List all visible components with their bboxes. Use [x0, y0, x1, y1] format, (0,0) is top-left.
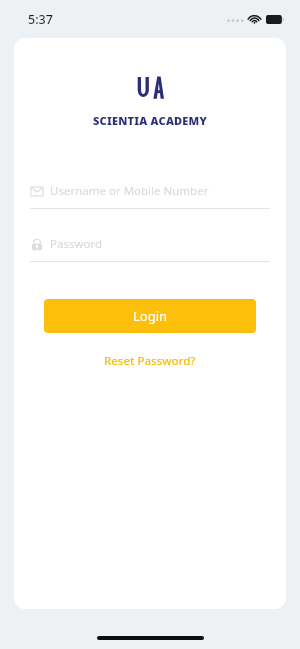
staticText: Password — [50, 236, 103, 252]
staticText: 5:37 — [28, 11, 53, 28]
staticText: Reset Password? — [104, 353, 196, 369]
button[interactable]: Password — [30, 234, 270, 262]
button[interactable]: Reset Password? — [98, 351, 202, 371]
staticText: Username or Mobile Number — [50, 183, 209, 199]
button[interactable]: Username or Mobile Number — [30, 181, 270, 209]
staticText: Login — [133, 307, 168, 325]
staticText: SCIENTIA ACADEMY — [93, 113, 207, 128]
button[interactable]: Login — [44, 299, 256, 333]
